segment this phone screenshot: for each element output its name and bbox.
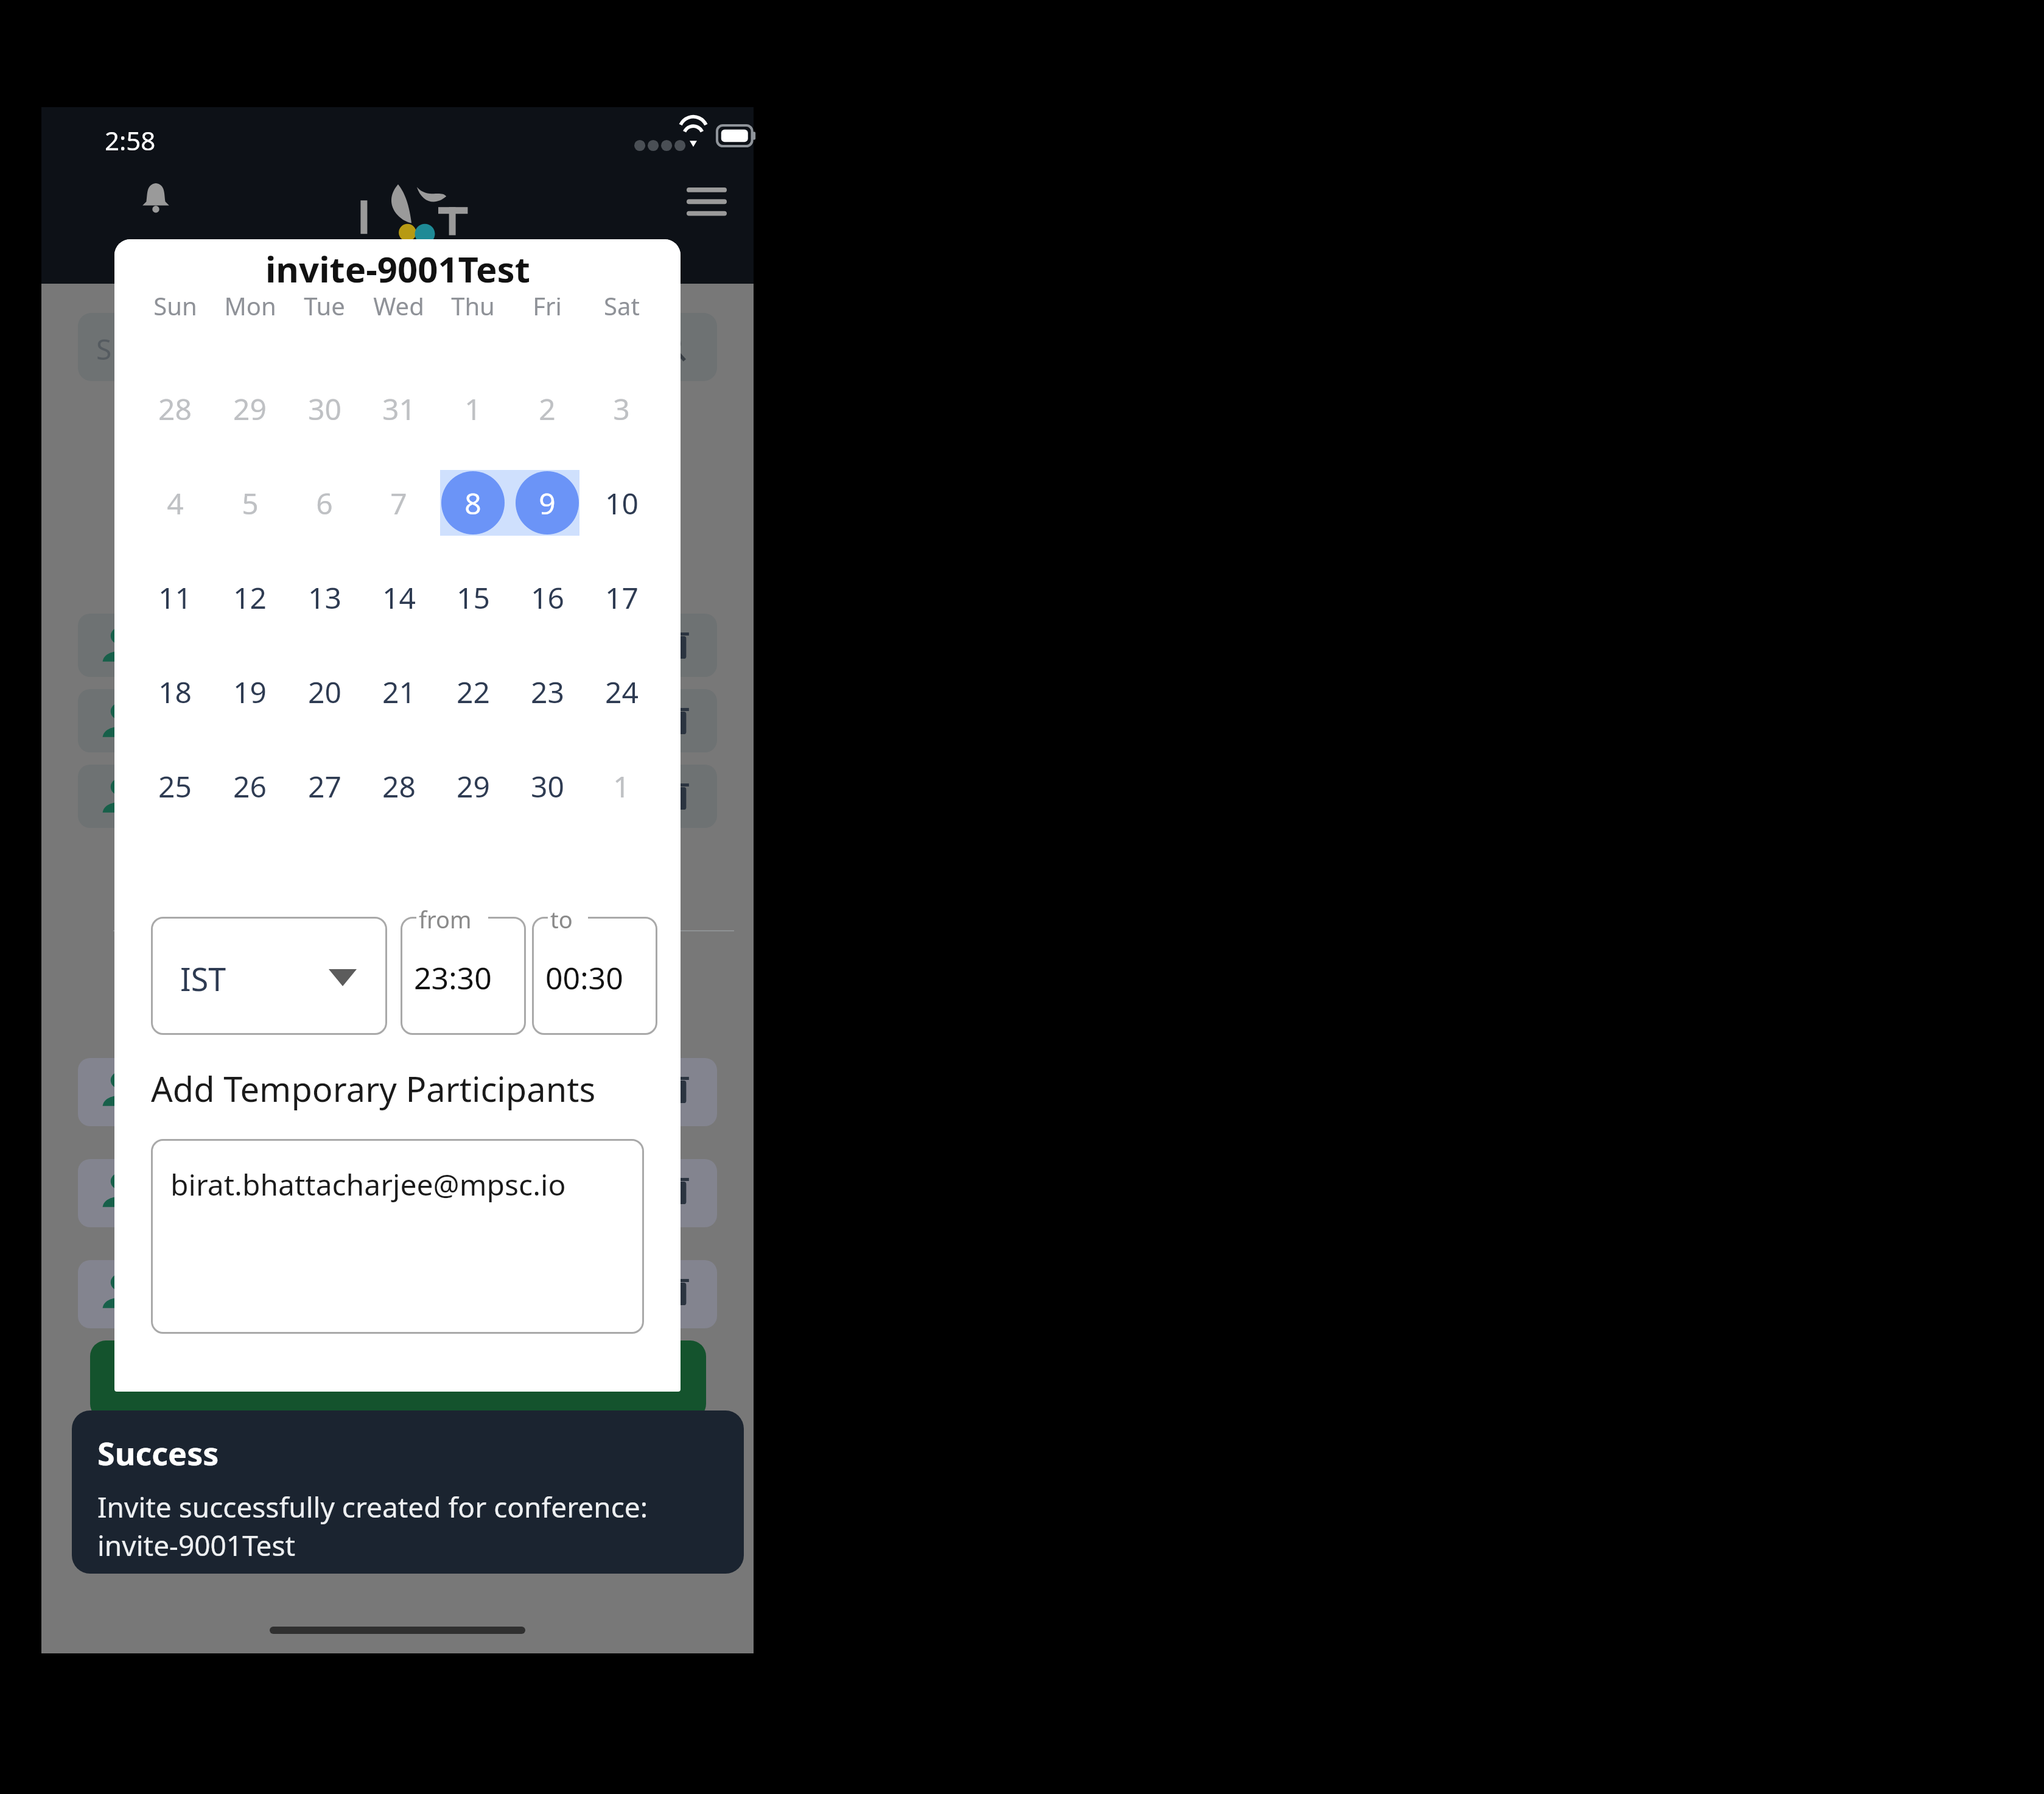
staticText: 6 (316, 483, 333, 523)
staticText: 31 (382, 389, 416, 429)
button[interactable]: 22 (436, 656, 510, 727)
staticText: 24 (605, 672, 639, 712)
button[interactable]: 18 (138, 656, 212, 727)
button[interactable]: 29 (436, 751, 510, 821)
button[interactable]: Notifications (127, 168, 185, 226)
staticText: 19 (233, 672, 267, 712)
staticText: to (550, 903, 573, 935)
staticText: Fri (533, 289, 562, 322)
staticText: 3 (613, 389, 630, 429)
staticText: In (116, 970, 152, 1017)
button[interactable]: 4 (138, 468, 212, 538)
button[interactable] (78, 1260, 717, 1328)
button[interactable]: 28 (362, 751, 436, 821)
button[interactable]: 28 (138, 373, 212, 444)
button[interactable]: 14 (362, 562, 436, 632)
staticText: 9 (539, 483, 556, 523)
button[interactable]: 29 (212, 373, 287, 444)
button[interactable]: to (532, 917, 657, 1035)
staticText: 23:30 (414, 957, 492, 998)
button[interactable]: 31 (362, 373, 436, 444)
button[interactable]: 19 (212, 656, 287, 727)
button[interactable]: 26 (212, 751, 287, 821)
staticText: 28 (382, 766, 416, 806)
staticText: 8 (464, 483, 481, 523)
staticText: 18 (158, 672, 192, 712)
button[interactable]: 13 (287, 562, 362, 632)
button[interactable]: 7 (362, 468, 436, 538)
button[interactable]: Success (72, 1410, 744, 1574)
staticText: 29 (233, 389, 267, 429)
staticText: Success (97, 1431, 219, 1474)
button[interactable] (78, 1058, 717, 1126)
staticText: 14 (382, 578, 416, 617)
staticText: 22 (457, 672, 490, 712)
staticText: 10 (605, 483, 639, 523)
staticText: invite-9001Test (97, 1526, 296, 1564)
staticText: 2:58 (105, 123, 156, 158)
staticText: 1 (613, 766, 630, 806)
button[interactable]: 5 (212, 468, 287, 538)
button[interactable]: 8 (436, 468, 510, 538)
button[interactable] (78, 765, 717, 828)
staticText: Invite successfully created for conferen… (97, 1488, 648, 1526)
staticText: S (96, 330, 112, 368)
staticText: 1 (464, 389, 481, 429)
staticText: 16 (531, 578, 564, 617)
button[interactable]: 16 (510, 562, 584, 632)
staticText: birat.bhattacharjee@mpsc.io (170, 1165, 566, 1204)
staticText: Tue (304, 289, 345, 322)
button[interactable]: from (401, 917, 526, 1035)
staticText: 00:30 (545, 957, 623, 998)
button[interactable]: 12 (212, 562, 287, 632)
staticText: 23 (531, 672, 564, 712)
button[interactable] (78, 614, 717, 677)
staticText: 11 (158, 578, 192, 617)
staticText: Sat (604, 289, 640, 322)
button[interactable] (90, 1340, 706, 1420)
staticText: 29 (457, 766, 490, 806)
button[interactable]: 21 (362, 656, 436, 727)
staticText: 26 (233, 766, 267, 806)
button[interactable]: birat.bhattacharjee@mpsc.io (151, 1139, 644, 1334)
staticText: 30 (531, 766, 564, 806)
staticText: invite-9001Test (265, 245, 530, 293)
staticText: 21 (382, 672, 416, 712)
staticText: 25 (158, 766, 192, 806)
button[interactable]: 23 (510, 656, 584, 727)
staticText: from (419, 903, 472, 935)
staticText: 15 (457, 578, 490, 617)
staticText: 7 (390, 483, 407, 523)
staticText: 17 (605, 578, 639, 617)
button[interactable]: 10 (584, 468, 659, 538)
button[interactable]: 1 (584, 751, 659, 821)
staticText: Sun (153, 289, 197, 322)
button[interactable]: 25 (138, 751, 212, 821)
button[interactable]: 30 (287, 373, 362, 444)
button[interactable]: IST (151, 917, 387, 1035)
button[interactable]: 20 (287, 656, 362, 727)
button[interactable]: 11 (138, 562, 212, 632)
button[interactable] (78, 689, 717, 752)
button[interactable]: 3 (584, 373, 659, 444)
button[interactable] (78, 1159, 717, 1227)
button[interactable]: 27 (287, 751, 362, 821)
staticText: 28 (158, 389, 192, 429)
staticText: 30 (308, 389, 341, 429)
staticText: 2 (539, 389, 556, 429)
button[interactable]: 15 (436, 562, 510, 632)
button[interactable]: S (78, 313, 717, 381)
button[interactable]: 6 (287, 468, 362, 538)
button[interactable]: 9 (510, 468, 584, 538)
button[interactable]: Menu (673, 168, 740, 235)
staticText: IST (180, 957, 226, 1000)
button[interactable]: 30 (510, 751, 584, 821)
button[interactable]: 2 (510, 373, 584, 444)
button[interactable]: 24 (584, 656, 659, 727)
staticText: 13 (308, 578, 341, 617)
button[interactable]: 17 (584, 562, 659, 632)
staticText: Mon (224, 289, 276, 322)
button[interactable]: 1 (436, 373, 510, 444)
staticText: 27 (308, 766, 341, 806)
